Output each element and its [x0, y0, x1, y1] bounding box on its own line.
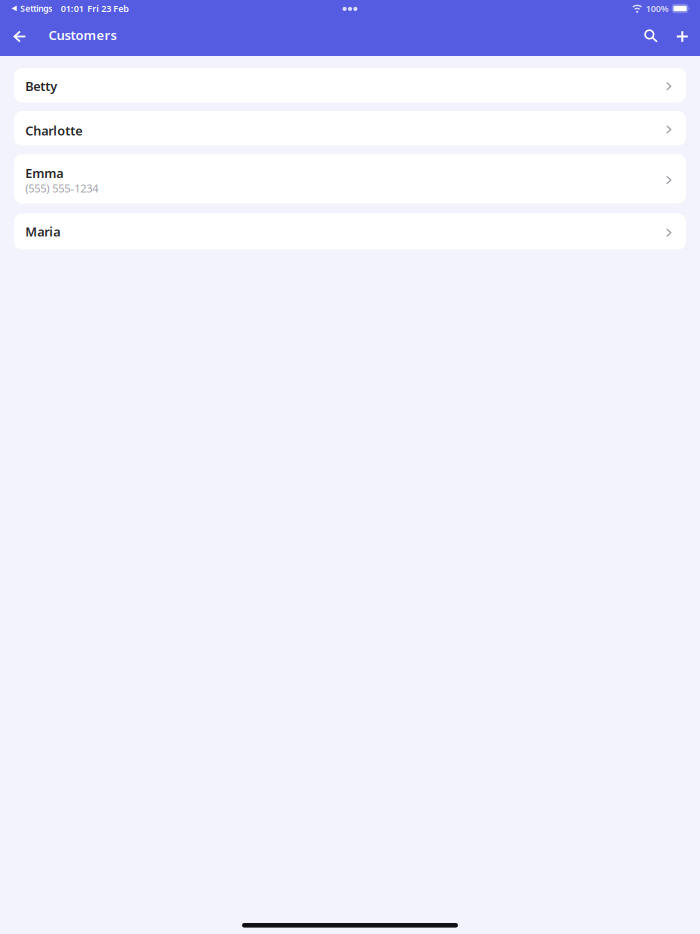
button[interactable]: Maria	[14, 212, 686, 250]
staticText: Charlotte	[25, 122, 82, 139]
button[interactable]: Add customer	[669, 18, 695, 55]
button[interactable]: Back	[8, 18, 32, 55]
staticText: Emma	[25, 164, 63, 182]
staticText: Maria	[25, 223, 60, 240]
staticText: Settings	[20, 3, 52, 14]
staticText: Betty	[25, 77, 57, 95]
button[interactable]: Charlotte	[14, 111, 686, 146]
staticText: 01:01	[61, 2, 84, 15]
staticText: 100%	[646, 2, 669, 15]
staticText: Customers	[49, 26, 117, 44]
button[interactable]: Betty	[14, 68, 686, 102]
staticText: Fri 23 Feb	[87, 2, 129, 15]
button[interactable]: Search	[632, 18, 669, 55]
button[interactable]: Emma	[14, 154, 686, 204]
staticText: (555) 555-1234	[25, 181, 98, 196]
